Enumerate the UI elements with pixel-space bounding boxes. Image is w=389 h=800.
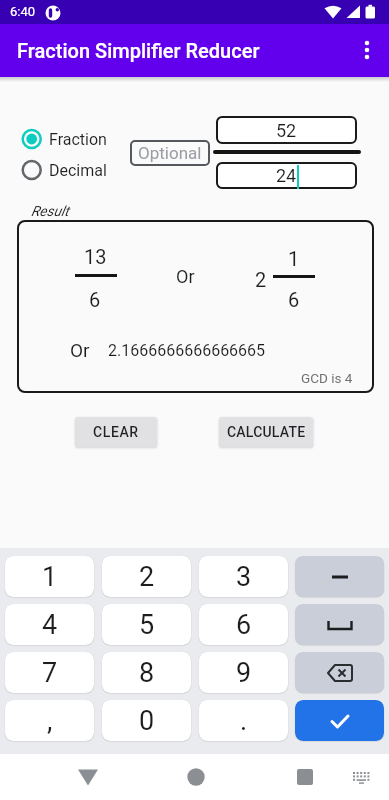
button[interactable]: 0 bbox=[102, 700, 191, 741]
button[interactable]: 7 bbox=[5, 652, 94, 693]
staticText: GCD is 4 bbox=[301, 370, 353, 386]
button[interactable]: , bbox=[5, 700, 94, 741]
staticText: . bbox=[240, 705, 248, 737]
button[interactable]: . bbox=[199, 700, 288, 741]
staticText: Result bbox=[31, 203, 69, 219]
button[interactable]: 24 bbox=[216, 162, 357, 189]
button[interactable]: Fraction bbox=[14, 126, 124, 152]
button[interactable]: 5 bbox=[102, 604, 191, 645]
button[interactable]: 3 bbox=[199, 556, 288, 597]
button[interactable]: 4 bbox=[5, 604, 94, 645]
staticText: 3 bbox=[236, 561, 252, 593]
staticText: 6 bbox=[288, 288, 300, 311]
staticText: 24 bbox=[276, 165, 297, 186]
button[interactable]: 52 bbox=[216, 116, 357, 144]
button[interactable]: 8 bbox=[102, 652, 191, 693]
staticText: 13 bbox=[84, 245, 107, 268]
staticText: Fraction Simplifier Reducer bbox=[17, 39, 260, 62]
staticText: 6 bbox=[236, 609, 252, 641]
staticText: Decimal bbox=[49, 161, 107, 180]
button[interactable] bbox=[283, 756, 327, 798]
button[interactable] bbox=[349, 31, 389, 71]
staticText: CALCULATE bbox=[227, 424, 306, 440]
button[interactable] bbox=[295, 700, 384, 741]
staticText: Fraction bbox=[49, 130, 107, 149]
staticText: 1 bbox=[42, 561, 58, 593]
staticText: , bbox=[47, 705, 53, 737]
staticText: Or bbox=[176, 266, 195, 287]
button[interactable]: Decimal bbox=[14, 157, 124, 183]
staticText: 52 bbox=[276, 120, 297, 141]
staticText: 9 bbox=[236, 657, 252, 689]
button[interactable]: 9 bbox=[199, 652, 288, 693]
staticText: 1 bbox=[288, 247, 300, 270]
staticText: 0 bbox=[139, 705, 155, 737]
staticText: 5 bbox=[139, 609, 155, 641]
button[interactable]: CALCULATE bbox=[219, 417, 313, 447]
staticText: 4 bbox=[42, 609, 58, 641]
staticText: Or bbox=[70, 339, 90, 361]
button[interactable]: 6 bbox=[199, 604, 288, 645]
staticText: Optional bbox=[138, 143, 202, 163]
staticText: CLEAR bbox=[93, 424, 139, 440]
button[interactable]: 2 bbox=[102, 556, 191, 597]
button[interactable] bbox=[66, 756, 110, 798]
staticText: 8 bbox=[139, 657, 155, 689]
button[interactable]: CLEAR bbox=[75, 417, 157, 447]
staticText: 6:40 bbox=[10, 4, 36, 19]
staticText: 2 bbox=[255, 268, 267, 291]
button[interactable] bbox=[295, 652, 384, 693]
staticText: 2 bbox=[139, 561, 155, 593]
button[interactable] bbox=[174, 756, 218, 798]
button[interactable]: Optional bbox=[130, 140, 210, 166]
staticText: 7 bbox=[42, 657, 58, 689]
button[interactable]: 1 bbox=[5, 556, 94, 597]
button[interactable] bbox=[343, 760, 379, 794]
staticText: 2.1666666666666665 bbox=[108, 341, 266, 360]
staticText: 6 bbox=[89, 288, 101, 311]
button[interactable] bbox=[295, 604, 384, 645]
button[interactable] bbox=[295, 556, 384, 597]
